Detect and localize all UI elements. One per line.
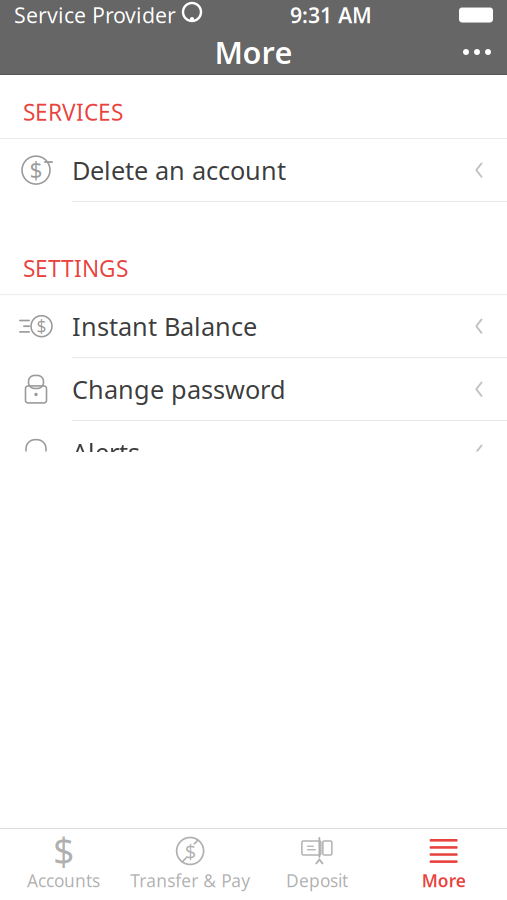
staticText: $ (29, 155, 42, 185)
staticText: SERVICES (23, 97, 123, 127)
staticText: Transfer & Pay (130, 869, 250, 892)
staticText: Change password (72, 372, 286, 406)
button[interactable]: $ (0, 829, 127, 900)
staticText: More (422, 869, 466, 892)
staticText: More (214, 32, 292, 72)
staticText: Instant Balance (72, 309, 257, 343)
button[interactable]: More (380, 829, 507, 900)
staticText: $ (36, 315, 46, 338)
staticText: Delete an account (72, 153, 286, 187)
staticText: 9:31 AM (290, 1, 372, 29)
staticText: SETTINGS (23, 253, 128, 283)
button[interactable]: Change password (0, 358, 507, 421)
staticText: Deposit (286, 869, 348, 892)
button[interactable]: $ (0, 139, 507, 202)
staticText: Alerts (72, 435, 140, 469)
button[interactable]: Deposit (253, 829, 380, 900)
staticText: $ (53, 826, 74, 876)
staticText: Accounts (27, 869, 100, 892)
staticText: Service Provider (14, 1, 176, 29)
button[interactable]: $ (127, 829, 254, 900)
staticText: $ (185, 838, 196, 864)
button[interactable]: More options (447, 37, 507, 67)
button[interactable]: Alerts (0, 421, 507, 484)
button[interactable]: $ (0, 295, 507, 358)
